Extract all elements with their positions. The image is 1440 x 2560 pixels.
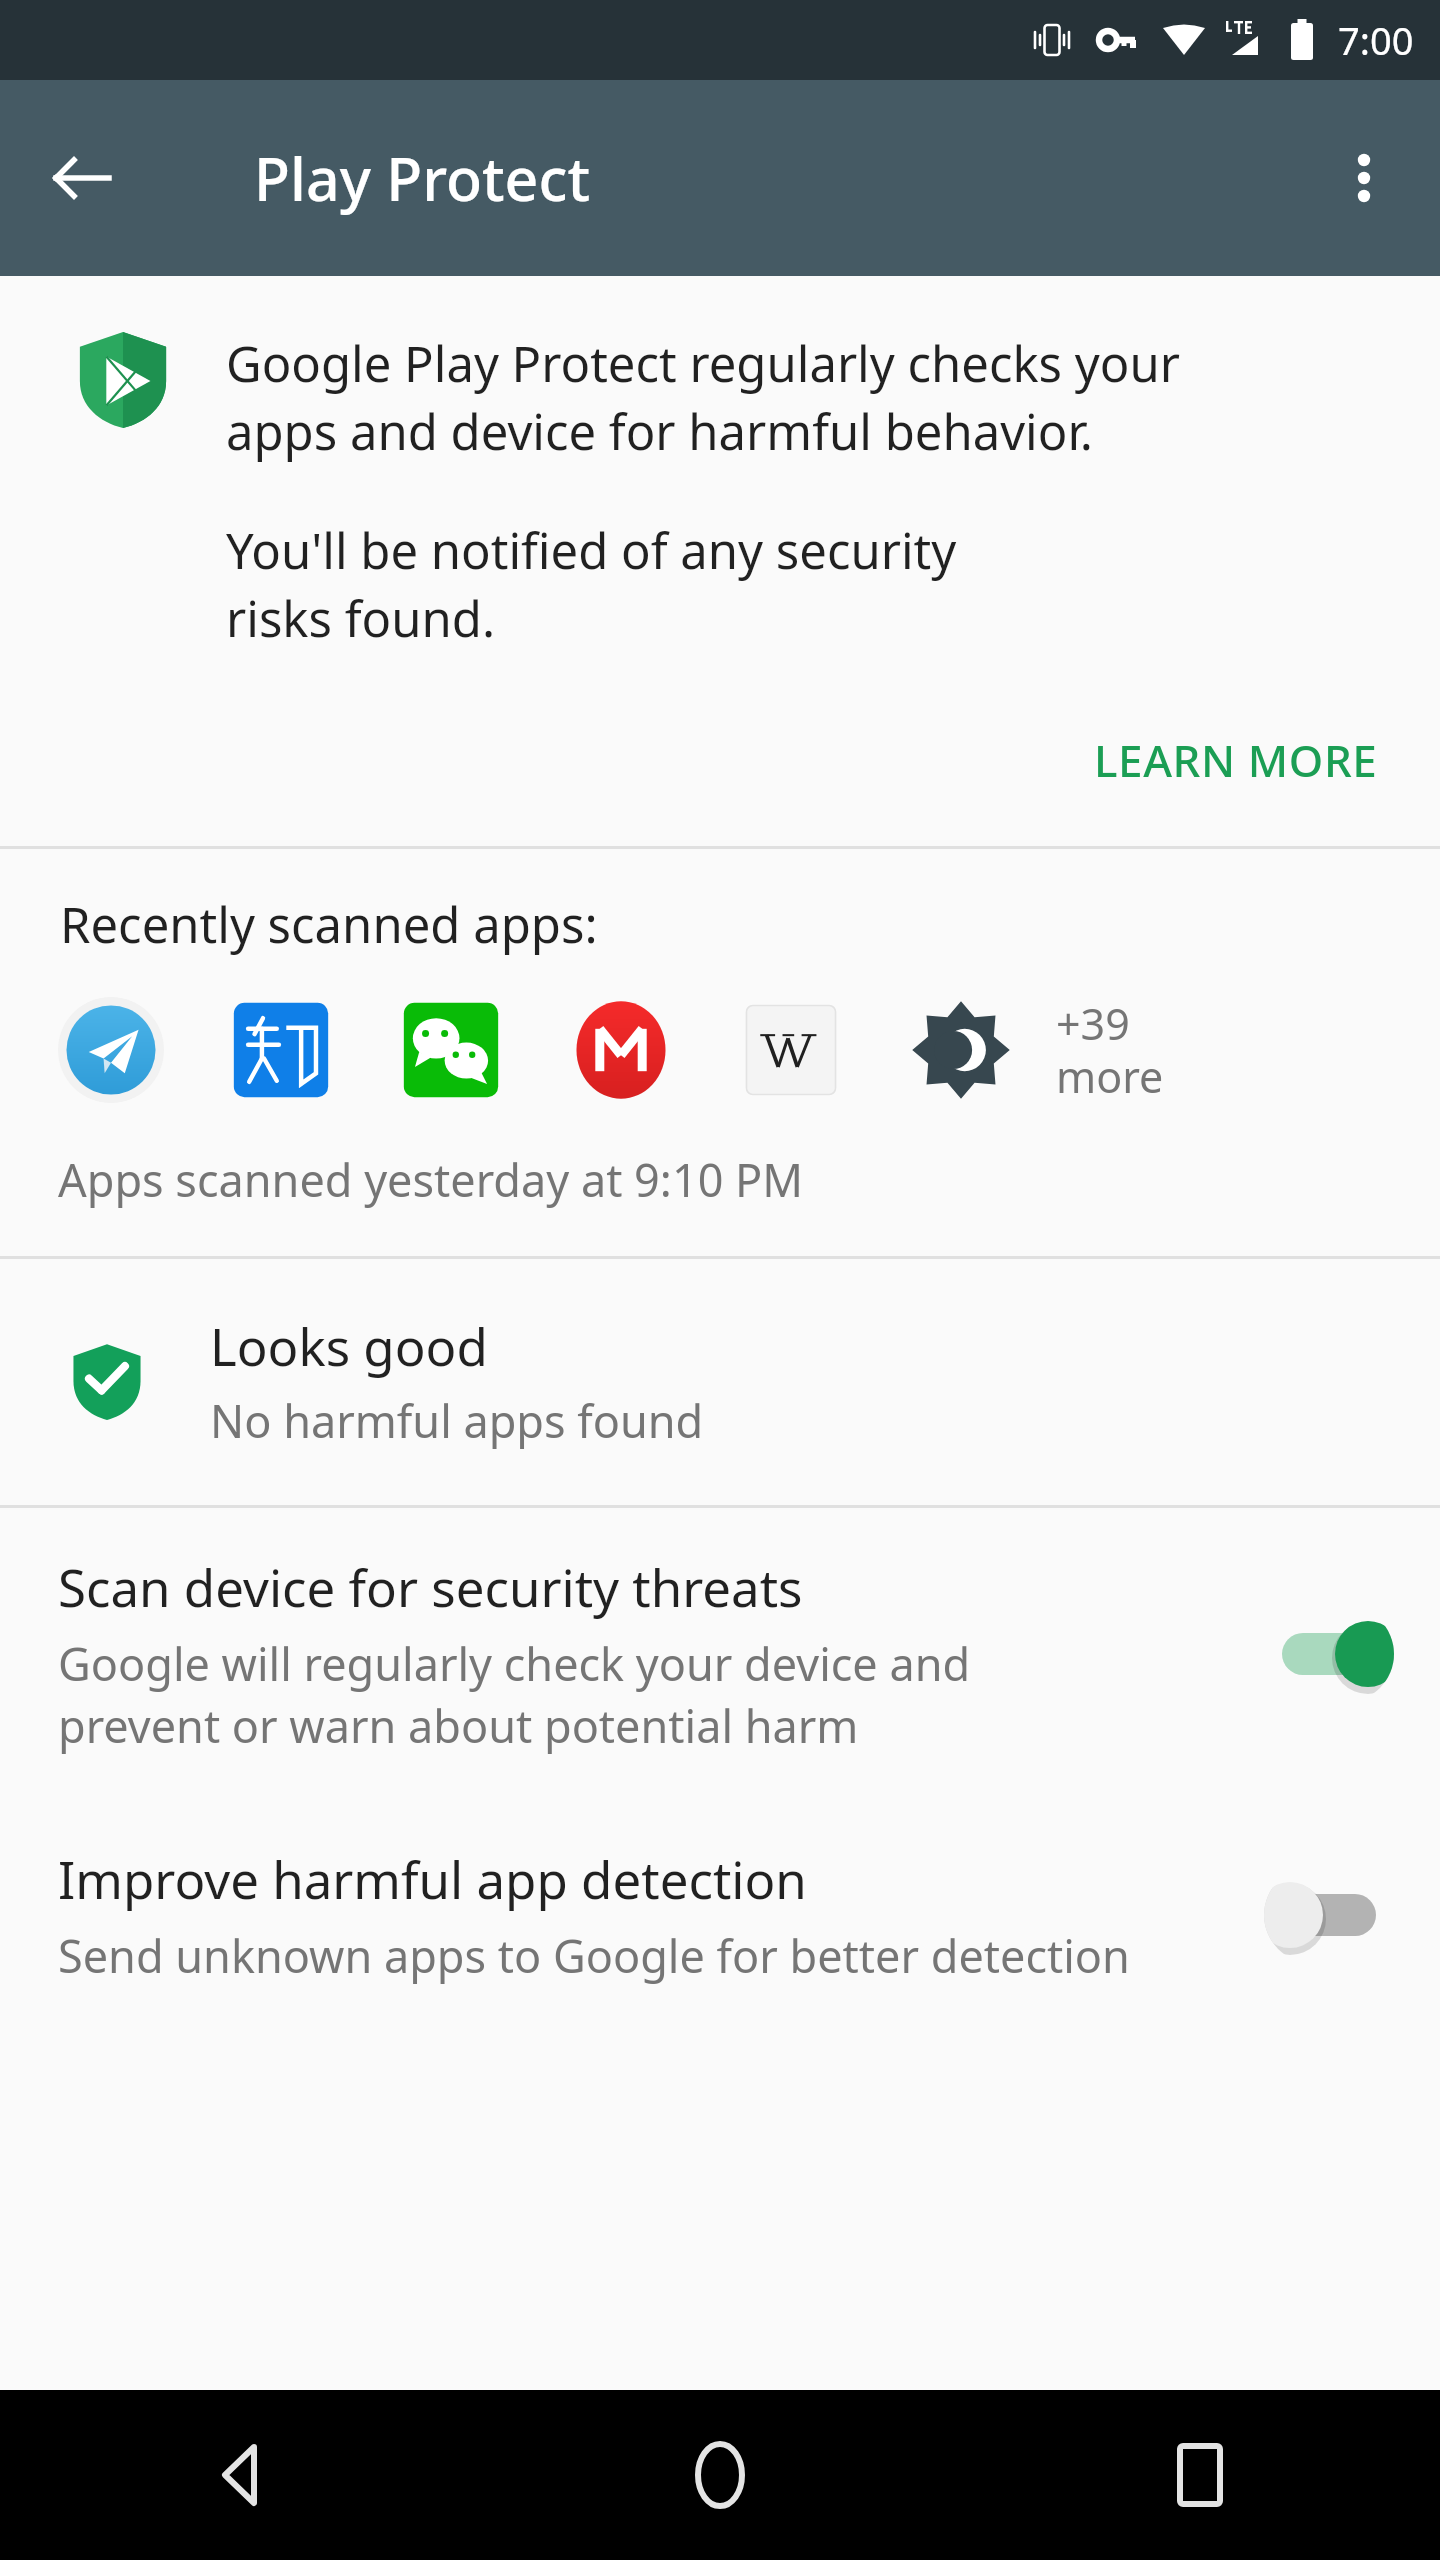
staticText: 7:00 [1338, 14, 1414, 66]
staticText: Apps scanned yesterday at 9:10 PM [58, 1149, 804, 1210]
staticText: Recently scanned apps: [60, 891, 598, 958]
button[interactable]: Improve harmful app detection [0, 1800, 1440, 2030]
button[interactable]: More options [1310, 124, 1418, 232]
button[interactable]: LEARN MORE [1070, 714, 1402, 806]
button[interactable]: Recents [960, 2390, 1440, 2560]
staticText: LEARN MORE [1094, 730, 1378, 790]
button[interactable]: Back [0, 2390, 480, 2560]
button[interactable]: Off [1264, 1867, 1394, 1963]
staticText: Scan device for security threats [58, 1552, 803, 1621]
staticText: Improve harmful app detection [58, 1844, 807, 1913]
staticText: +39 more [1056, 994, 1164, 1105]
staticText: Google will regularly check your device … [58, 1633, 971, 1756]
staticText: Google Play Protect regularly checks you… [226, 330, 1180, 465]
button[interactable]: On [1264, 1606, 1394, 1702]
staticText: Send unknown apps to Google for better d… [58, 1925, 1130, 1986]
staticText: No harmful apps found [210, 1390, 704, 1451]
staticText: Play Protect [254, 138, 591, 218]
staticText: You'll be notified of any security risks… [226, 517, 957, 652]
button[interactable]: Scan device for security threats [0, 1508, 1440, 1800]
button[interactable]: Back [26, 122, 138, 234]
button[interactable]: Home [480, 2390, 960, 2560]
button[interactable]: Looks good [0, 1259, 1440, 1505]
staticText: Looks good [210, 1311, 488, 1380]
